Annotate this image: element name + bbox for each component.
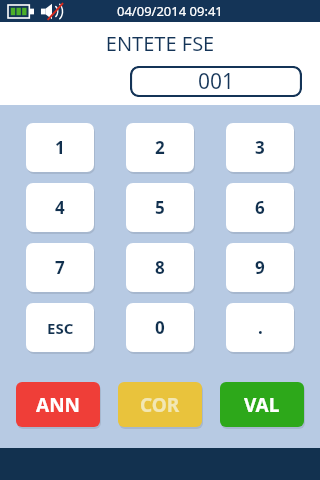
staticText: VAL — [244, 392, 280, 418]
button[interactable]: 4 — [26, 183, 94, 232]
staticText: 4 — [55, 196, 65, 219]
button[interactable]: ESC — [26, 303, 94, 352]
button[interactable]: 5 — [126, 183, 194, 232]
button[interactable]: 2 — [126, 123, 194, 172]
staticText: 6 — [255, 196, 265, 219]
staticText: 7 — [55, 256, 65, 279]
button[interactable]: 8 — [126, 243, 194, 292]
button[interactable]: 0 — [126, 303, 194, 352]
button[interactable]: 9 — [226, 243, 294, 292]
staticText: ESC — [47, 318, 74, 338]
staticText: 2 — [155, 136, 165, 159]
staticText: COR — [140, 392, 180, 418]
button[interactable]: 7 — [26, 243, 94, 292]
staticText: ENTETE FSE — [0, 30, 320, 57]
button[interactable]: 3 — [226, 123, 294, 172]
button[interactable]: COR — [118, 382, 202, 427]
staticText: 1 — [55, 136, 65, 159]
staticText: ANN — [36, 392, 81, 418]
staticText: 0 — [155, 316, 165, 339]
staticText: 9 — [255, 256, 265, 279]
staticText: . — [258, 316, 263, 339]
button[interactable]: ANN — [16, 382, 100, 427]
staticText: 5 — [155, 196, 165, 219]
staticText: 3 — [255, 136, 265, 159]
staticText: 04/09/2014 09:41 — [117, 2, 223, 20]
staticText: 001 — [198, 67, 235, 96]
staticText: 8 — [155, 256, 165, 279]
button[interactable]: 1 — [26, 123, 94, 172]
button[interactable]: 6 — [226, 183, 294, 232]
button[interactable]: 001 — [130, 66, 302, 97]
button[interactable]: VAL — [220, 382, 304, 427]
button[interactable]: . — [226, 303, 294, 352]
